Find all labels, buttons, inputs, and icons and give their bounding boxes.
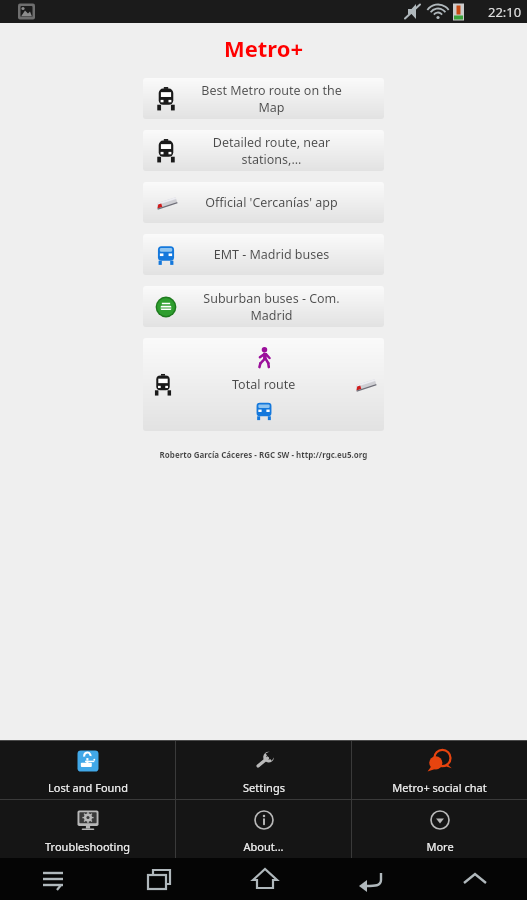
button[interactable]: Official 'Cercanías' app — [143, 182, 384, 223]
button[interactable]: Best Metro route on the Map — [143, 78, 384, 119]
staticText: Suburban buses - Com. Madrid — [189, 290, 354, 324]
staticText: More — [426, 839, 454, 854]
staticText: Official 'Cercanías' app — [189, 194, 354, 211]
button[interactable]: Suburban buses - Com. Madrid — [143, 286, 384, 327]
button[interactable]: More — [352, 800, 527, 858]
staticText: Troubleshooting — [45, 839, 130, 854]
button[interactable]: Settings — [176, 741, 351, 799]
staticText: Metro+ — [0, 33, 527, 63]
staticText: 22:10 — [488, 3, 522, 21]
staticText: EMT - Madrid buses — [189, 246, 354, 263]
staticText: About... — [243, 839, 284, 854]
button[interactable]: Menu — [0, 858, 106, 900]
button[interactable]: Home — [212, 858, 317, 900]
staticText: Lost and Found — [48, 780, 128, 795]
button[interactable]: Metro+ social chat — [352, 741, 527, 799]
button[interactable]: Total route — [143, 338, 384, 431]
button[interactable]: Back — [317, 858, 422, 900]
button[interactable]: EMT - Madrid buses — [143, 234, 384, 275]
staticText: Detailed route, near stations,... — [189, 134, 354, 168]
button[interactable]: Troubleshooting — [0, 800, 175, 858]
button[interactable]: Detailed route, near stations,... — [143, 130, 384, 171]
button[interactable]: Recents — [106, 858, 212, 900]
button[interactable]: Expand — [422, 858, 527, 900]
staticText: Best Metro route on the Map — [189, 82, 354, 116]
staticText: Settings — [243, 780, 285, 795]
button[interactable]: About... — [176, 800, 351, 858]
button[interactable]: Lost and Found — [0, 741, 175, 799]
staticText: Metro+ social chat — [392, 780, 487, 795]
staticText: Roberto García Cáceres - RGC SW - http:/… — [0, 449, 527, 460]
staticText: Total route — [232, 376, 296, 393]
